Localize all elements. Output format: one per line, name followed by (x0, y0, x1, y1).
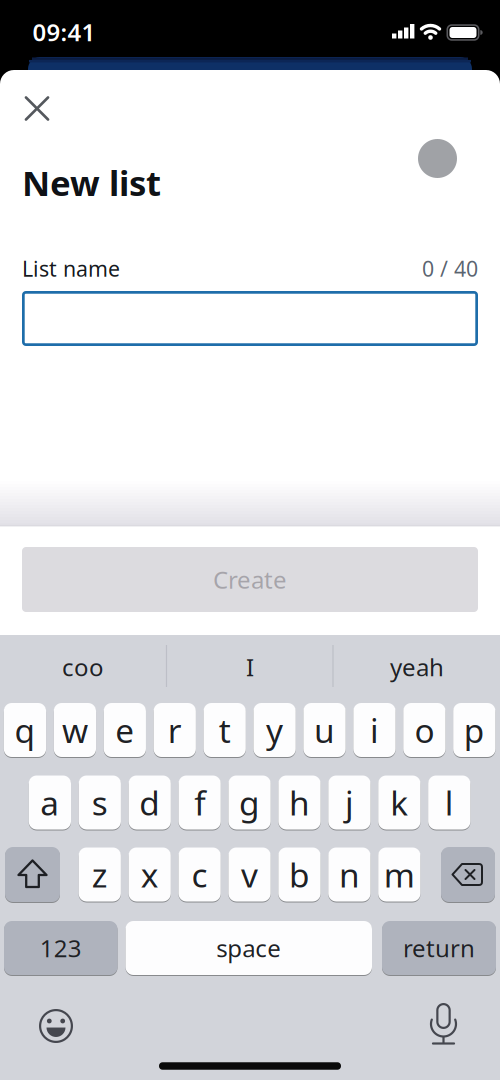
staticText: n (339, 852, 360, 897)
button[interactable]: y (253, 702, 296, 758)
staticText: k (390, 780, 408, 825)
button[interactable]: Dictate (421, 1000, 465, 1048)
staticText: space (216, 932, 281, 964)
button[interactable]: r (154, 702, 196, 758)
staticText: return (403, 932, 475, 964)
button[interactable]: I (170, 639, 330, 695)
staticText: r (168, 708, 182, 752)
button[interactable]: z (79, 846, 121, 902)
button[interactable]: s (79, 774, 121, 830)
staticText: o (414, 708, 434, 752)
button[interactable]: return (382, 920, 496, 976)
button[interactable]: t (203, 702, 246, 758)
button[interactable]: yeah (337, 639, 497, 695)
staticText: 09:41 (32, 16, 95, 48)
staticText: I (246, 651, 254, 683)
button[interactable]: Emoji (34, 1004, 78, 1048)
button[interactable]: o (403, 702, 445, 758)
button[interactable]: j (328, 774, 371, 830)
staticText: j (345, 780, 354, 825)
button[interactable]: Create (22, 547, 478, 612)
staticText: i (370, 708, 379, 752)
button[interactable]: x (128, 846, 171, 902)
staticText: q (14, 708, 35, 752)
button[interactable]: n (328, 846, 370, 902)
button[interactable]: c (178, 846, 221, 902)
button[interactable]: 123 (4, 920, 117, 976)
staticText: New list (22, 159, 161, 205)
button[interactable]: space (125, 920, 372, 976)
staticText: w (62, 708, 88, 752)
button[interactable]: q (4, 702, 46, 758)
button[interactable]: l (428, 774, 470, 830)
staticText: coo (62, 651, 104, 683)
staticText: f (194, 780, 205, 825)
button[interactable]: d (129, 774, 171, 830)
staticText: m (384, 852, 415, 897)
staticText: z (92, 852, 108, 897)
button[interactable]: Delete (441, 846, 495, 902)
staticText: p (464, 708, 485, 752)
staticText: a (40, 780, 59, 825)
button[interactable]: Profile (418, 139, 457, 178)
button[interactable]: b (278, 846, 321, 902)
button[interactable]: w (54, 702, 96, 758)
button[interactable]: a (29, 774, 71, 830)
button[interactable]: g (228, 774, 271, 830)
button[interactable]: coo (3, 639, 163, 695)
button[interactable]: m (378, 846, 420, 902)
staticText: h (289, 780, 310, 825)
staticText: yeah (390, 651, 444, 683)
staticText: t (219, 708, 231, 752)
button[interactable]: Shift (5, 846, 60, 902)
button[interactable]: f (178, 774, 221, 830)
staticText: v (241, 852, 258, 897)
button[interactable]: v (228, 846, 271, 902)
staticText: e (115, 708, 134, 752)
button[interactable]: List name (22, 291, 478, 346)
staticText: 0 / 40 (422, 254, 478, 283)
staticText: Create (213, 564, 287, 595)
button[interactable]: k (378, 774, 420, 830)
staticText: b (289, 852, 310, 897)
button[interactable]: i (353, 702, 396, 758)
button[interactable]: p (453, 702, 495, 758)
staticText: l (445, 780, 454, 825)
staticText: g (239, 780, 260, 825)
button[interactable]: u (303, 702, 346, 758)
button[interactable]: h (278, 774, 321, 830)
staticText: x (141, 852, 159, 897)
staticText: d (139, 780, 160, 825)
staticText: s (92, 780, 108, 825)
button[interactable]: Close (18, 89, 56, 127)
staticText: 123 (40, 932, 82, 964)
staticText: y (266, 708, 283, 752)
staticText: c (192, 852, 208, 897)
staticText: u (314, 708, 335, 752)
staticText: List name (22, 254, 120, 283)
button[interactable]: e (104, 702, 146, 758)
